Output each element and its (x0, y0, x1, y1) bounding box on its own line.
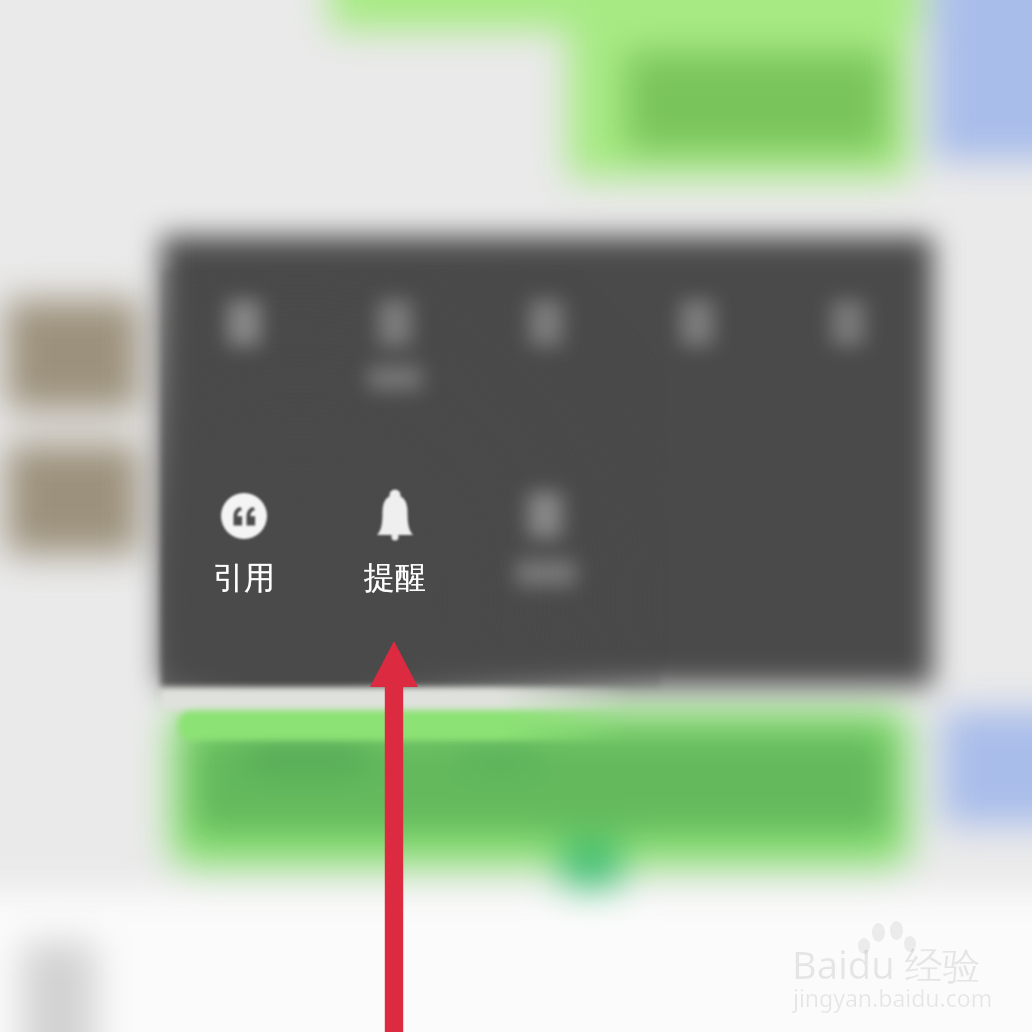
staticText: jingyan.baidu.com (793, 982, 993, 1013)
button[interactable]: 提醒 (325, 486, 465, 604)
staticText: 引用 (174, 558, 314, 597)
staticText: Baidu 经验 (792, 938, 981, 990)
button[interactable]: 引用 (174, 486, 314, 604)
staticText: 提醒 (325, 558, 465, 597)
